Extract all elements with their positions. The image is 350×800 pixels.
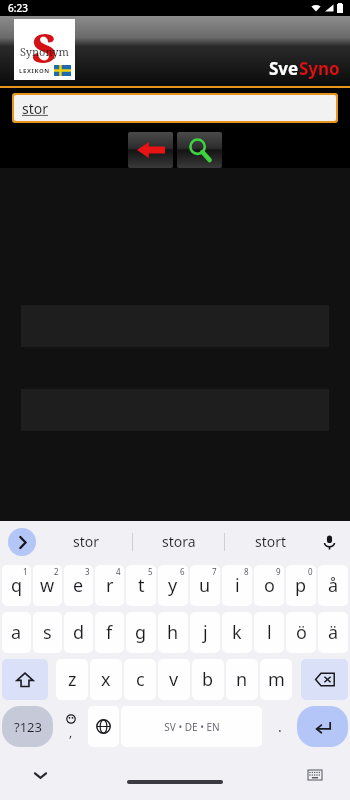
button[interactable]: . bbox=[264, 706, 295, 747]
staticText: , bbox=[69, 724, 73, 740]
button[interactable]: e bbox=[64, 565, 93, 606]
button[interactable]: stor bbox=[14, 95, 336, 121]
staticText: j bbox=[203, 620, 208, 645]
button[interactable]: o bbox=[254, 565, 284, 606]
button[interactable]: Voice input bbox=[316, 529, 342, 555]
staticText: stor bbox=[73, 532, 100, 551]
button[interactable]: ?123 bbox=[2, 706, 53, 747]
button[interactable]: stor bbox=[40, 521, 132, 562]
staticText: l bbox=[267, 620, 272, 645]
button[interactable]: Change language bbox=[88, 706, 119, 747]
staticText: r bbox=[106, 573, 114, 598]
staticText: 9 bbox=[276, 566, 281, 577]
button[interactable]: f bbox=[95, 612, 124, 653]
staticText: S bbox=[32, 20, 57, 74]
button[interactable]: t bbox=[126, 565, 156, 606]
button[interactable]: w bbox=[33, 565, 62, 606]
staticText: SV • DE • EN bbox=[164, 720, 220, 734]
staticText: 3 bbox=[85, 566, 90, 577]
staticText: i bbox=[235, 573, 240, 598]
button[interactable]: stort bbox=[225, 521, 316, 562]
staticText: 7 bbox=[212, 566, 217, 577]
button[interactable]: Search bbox=[177, 132, 222, 168]
staticText: LEXIKON bbox=[19, 67, 50, 75]
staticText: ö bbox=[296, 620, 307, 645]
button[interactable]: å bbox=[318, 565, 348, 606]
staticText: k bbox=[232, 620, 242, 645]
button[interactable]: Hide keyboard bbox=[28, 763, 52, 787]
staticText: 2 bbox=[54, 566, 59, 577]
button[interactable]: x bbox=[90, 659, 122, 700]
staticText: n bbox=[236, 667, 248, 692]
staticText: . bbox=[278, 717, 282, 736]
staticText: z bbox=[68, 667, 77, 692]
button[interactable]: g bbox=[126, 612, 156, 653]
staticText: g bbox=[135, 620, 147, 645]
staticText: Sve bbox=[269, 57, 299, 80]
button[interactable]: Back bbox=[128, 132, 173, 168]
button[interactable]: stora bbox=[133, 521, 224, 562]
staticText: 5 bbox=[148, 566, 153, 577]
button[interactable]: a bbox=[2, 612, 31, 653]
staticText: Syno bbox=[299, 57, 340, 80]
staticText: 1 bbox=[23, 566, 28, 577]
staticText: t bbox=[138, 573, 145, 598]
staticText: y bbox=[168, 573, 178, 598]
button[interactable]: n bbox=[226, 659, 258, 700]
staticText: d bbox=[73, 620, 85, 645]
staticText: b bbox=[202, 667, 214, 692]
button[interactable]: d bbox=[64, 612, 93, 653]
button[interactable]: j bbox=[190, 612, 220, 653]
staticText: e bbox=[73, 573, 84, 598]
staticText: 6:23 bbox=[8, 1, 28, 15]
staticText: å bbox=[328, 573, 339, 598]
button[interactable]: y bbox=[158, 565, 188, 606]
staticText: h bbox=[167, 620, 179, 645]
button[interactable]: Switch keyboard bbox=[304, 764, 326, 786]
button[interactable]: h bbox=[158, 612, 188, 653]
staticText: stora bbox=[162, 532, 196, 551]
staticText: x bbox=[101, 667, 111, 692]
button[interactable]: v bbox=[158, 659, 190, 700]
button[interactable]: k bbox=[222, 612, 252, 653]
staticText: m bbox=[268, 667, 285, 692]
staticText: s bbox=[43, 620, 52, 645]
staticText: u bbox=[199, 573, 211, 598]
staticText: v bbox=[169, 667, 179, 692]
button[interactable]: ö bbox=[286, 612, 316, 653]
button[interactable]: u bbox=[190, 565, 220, 606]
button[interactable]: r bbox=[95, 565, 124, 606]
button[interactable]: c bbox=[124, 659, 156, 700]
staticText: Synonym bbox=[20, 44, 69, 59]
button[interactable]: l bbox=[254, 612, 284, 653]
staticText: 4 bbox=[116, 566, 121, 577]
button[interactable]: More suggestions bbox=[8, 528, 36, 556]
staticText: a bbox=[11, 620, 22, 645]
button[interactable]: p bbox=[286, 565, 316, 606]
button[interactable]: Emoji and comma bbox=[55, 706, 86, 747]
button[interactable]: b bbox=[192, 659, 224, 700]
staticText: o bbox=[264, 573, 275, 598]
button[interactable]: z bbox=[56, 659, 88, 700]
staticText: stor bbox=[22, 99, 49, 118]
staticText: c bbox=[136, 667, 145, 692]
staticText: 6 bbox=[180, 566, 185, 577]
staticText: 0 bbox=[308, 566, 313, 577]
button[interactable]: i bbox=[222, 565, 252, 606]
staticText: ?123 bbox=[14, 718, 42, 736]
staticText: stort bbox=[255, 532, 287, 551]
button[interactable]: SV • DE • EN bbox=[121, 706, 262, 747]
staticText: ä bbox=[328, 620, 339, 645]
button[interactable]: S bbox=[14, 19, 75, 80]
button[interactable]: ä bbox=[318, 612, 348, 653]
staticText: q bbox=[11, 573, 23, 598]
button[interactable]: s bbox=[33, 612, 62, 653]
button[interactable]: m bbox=[260, 659, 292, 700]
button[interactable]: q bbox=[2, 565, 31, 606]
button[interactable]: Shift bbox=[2, 659, 48, 700]
staticText: 8 bbox=[244, 566, 249, 577]
staticText: p bbox=[295, 573, 307, 598]
button[interactable]: Backspace bbox=[301, 659, 348, 700]
staticText: f bbox=[106, 620, 113, 645]
button[interactable]: Enter bbox=[297, 706, 348, 747]
